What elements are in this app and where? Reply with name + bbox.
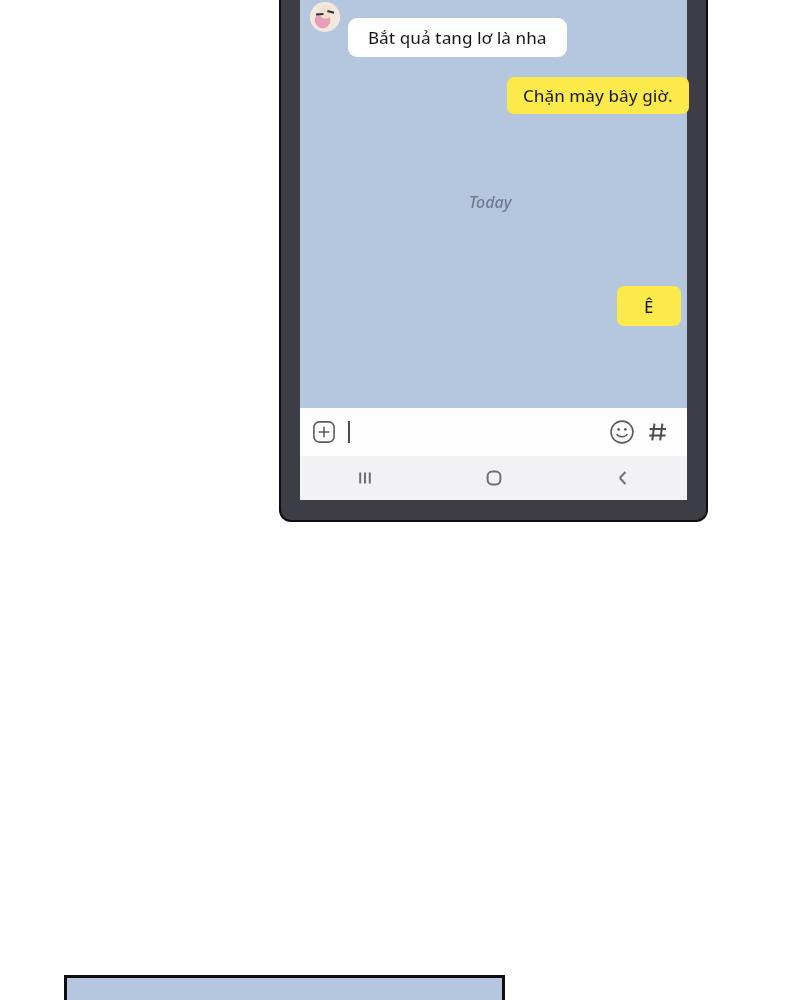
button[interactable]: Back [558,456,687,500]
button[interactable]: Ê [617,286,681,326]
button[interactable]: Chặn mày bây giờ. [507,77,689,114]
staticText: Bắt quả tang lơ là nha [368,26,547,49]
button[interactable]: Bắt quả tang lơ là nha [348,18,567,57]
button[interactable]: Home [429,456,558,500]
button[interactable]: Add attachment [312,420,336,444]
button[interactable]: Emoji [609,419,635,445]
staticText: Chặn mày bây giờ. [523,84,673,107]
staticText: Ê [644,295,654,318]
button[interactable]: Hashtag [647,421,669,443]
button[interactable]: Recents [300,456,429,500]
other: Avatar [310,2,340,32]
staticText: Today [469,191,512,213]
